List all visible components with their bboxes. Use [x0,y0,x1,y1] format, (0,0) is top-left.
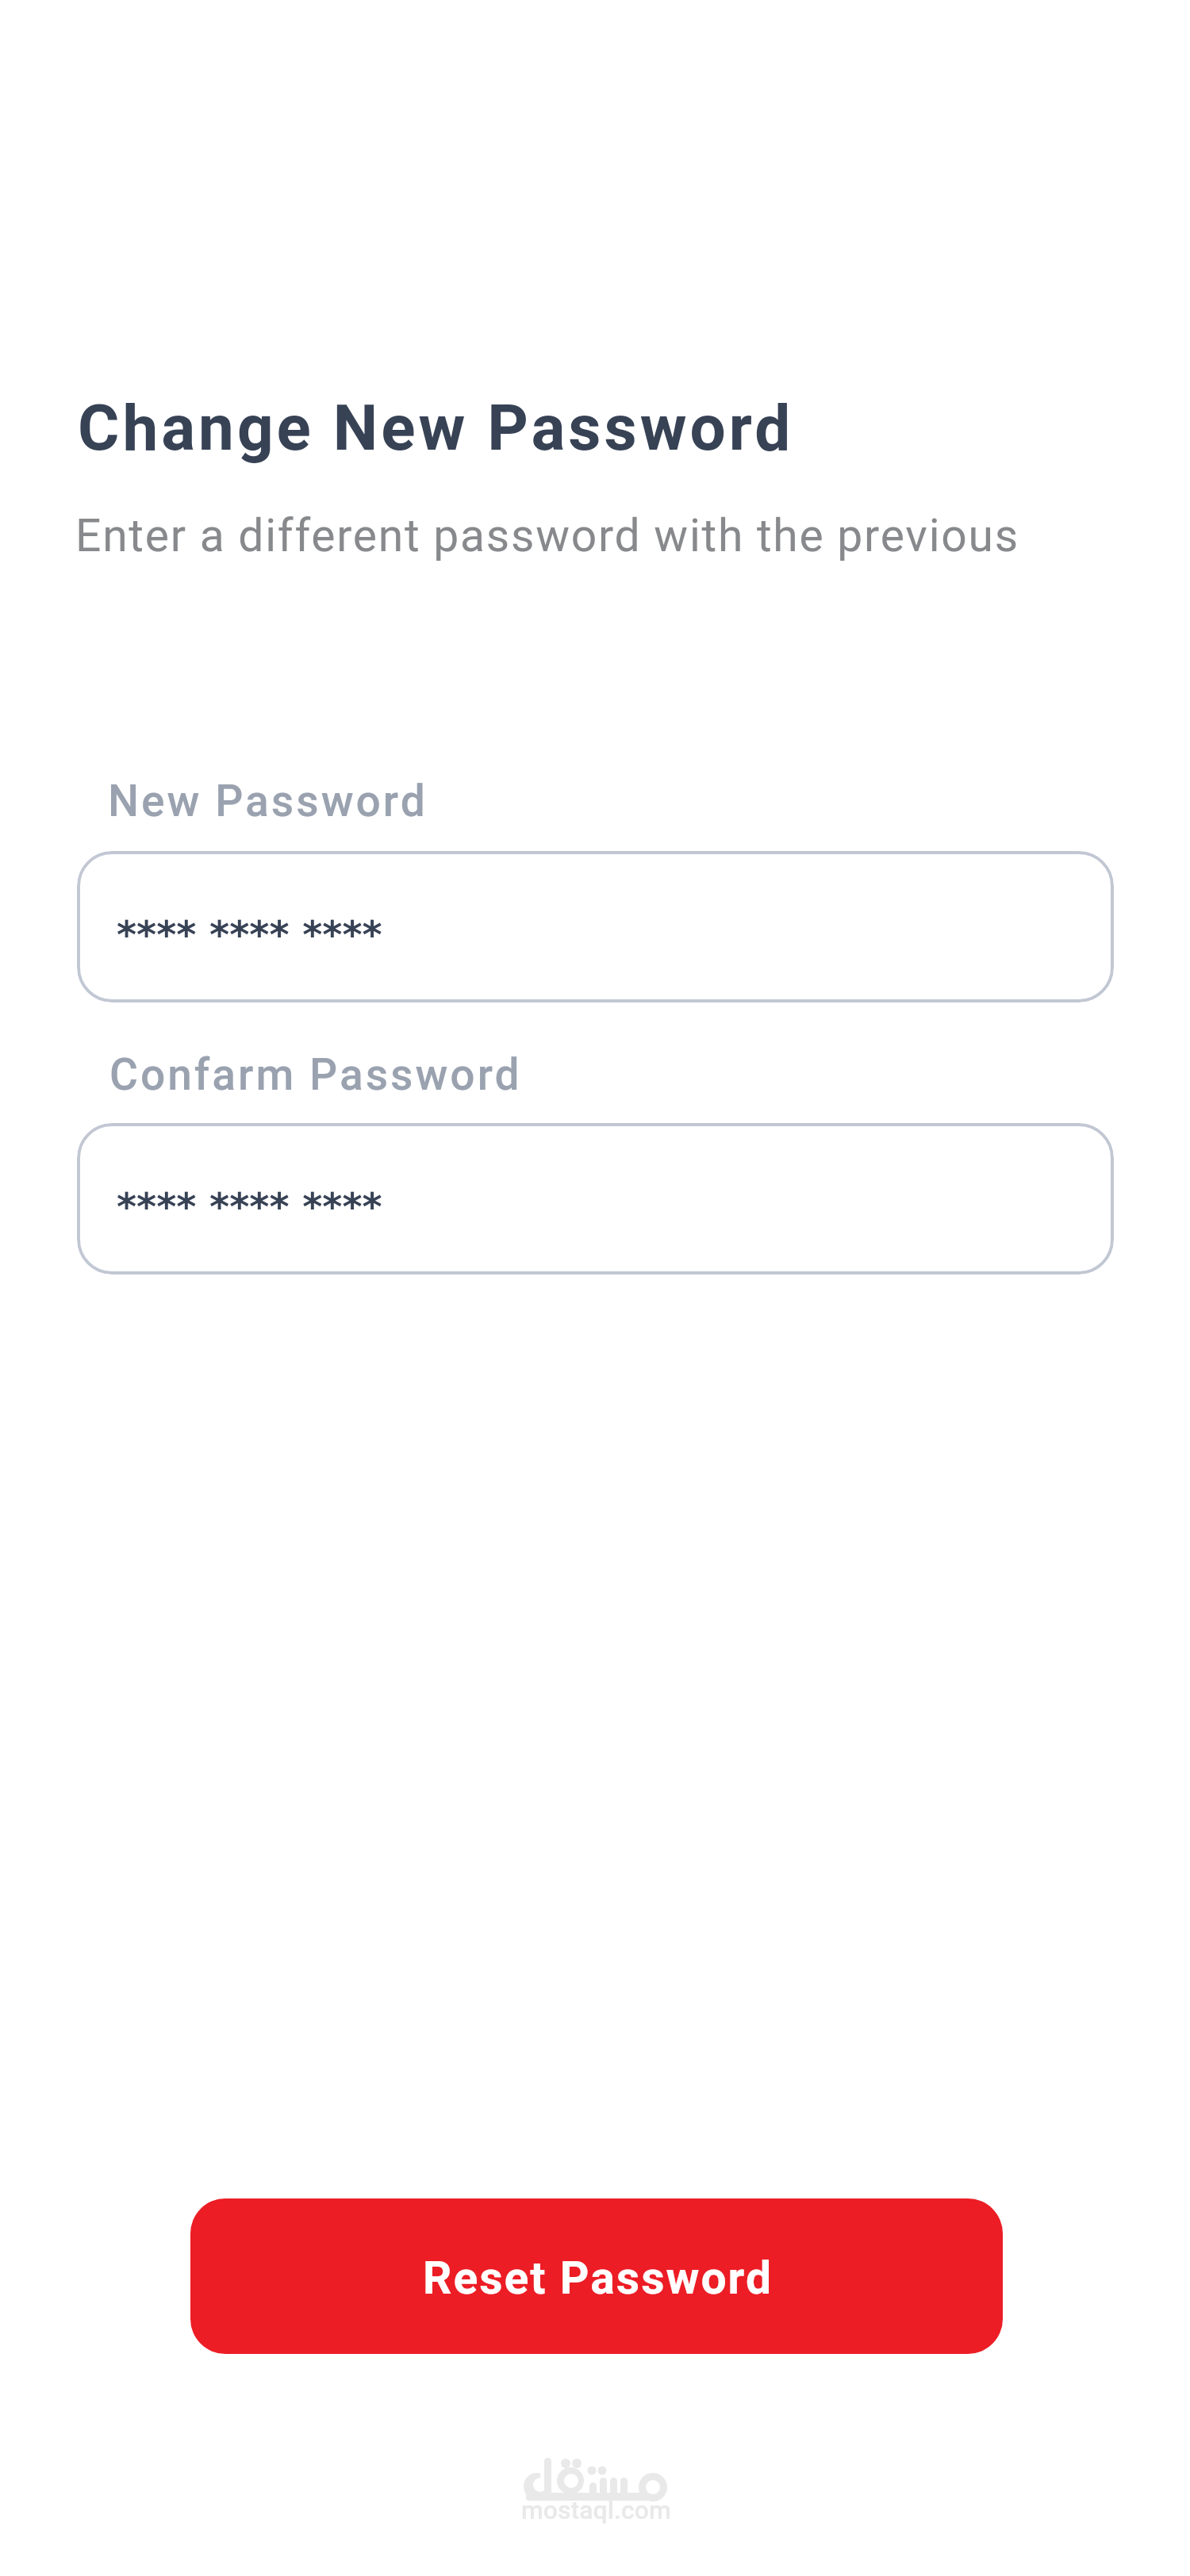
button[interactable]: Reset Password [190,2198,1003,2354]
staticText: Reset Password [423,2252,773,2305]
staticText: **** **** **** [117,912,382,956]
button[interactable]: New Password input [77,851,1114,1002]
staticText: Enter a different password with the prev… [75,509,1019,562]
staticText: Confarm Password [109,1049,522,1100]
staticText: mostaql.com [521,2495,671,2525]
other: mostaql.com watermark [520,2451,674,2530]
staticText: New Password [108,776,428,826]
button[interactable]: Confarm Password input [77,1123,1114,1275]
staticText: Change New Password [78,391,794,466]
staticText: **** **** **** [117,1184,382,1229]
